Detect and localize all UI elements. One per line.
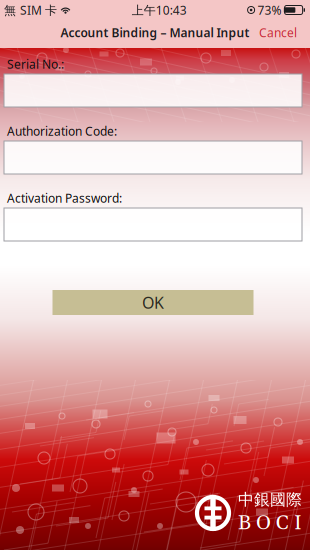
staticText: Authorization Code: xyxy=(7,123,117,139)
button[interactable] xyxy=(4,141,302,174)
staticText: Serial No.: xyxy=(7,56,64,72)
staticText: OK xyxy=(142,292,164,313)
staticText: Cancel xyxy=(259,24,297,40)
staticText: 中銀國際 xyxy=(238,490,302,510)
staticText: Activation Password: xyxy=(7,190,122,206)
button[interactable]: OK xyxy=(52,290,253,315)
staticText: B O C I xyxy=(238,511,302,536)
button[interactable] xyxy=(4,208,302,241)
button[interactable]: Cancel xyxy=(253,19,303,45)
button[interactable] xyxy=(4,74,302,107)
staticText: 73% xyxy=(258,2,282,18)
staticText: Account Binding – Manual Input xyxy=(60,24,249,40)
staticText: 無 SIM 卡 xyxy=(4,2,57,18)
staticText: 上午10:43 xyxy=(132,2,187,18)
